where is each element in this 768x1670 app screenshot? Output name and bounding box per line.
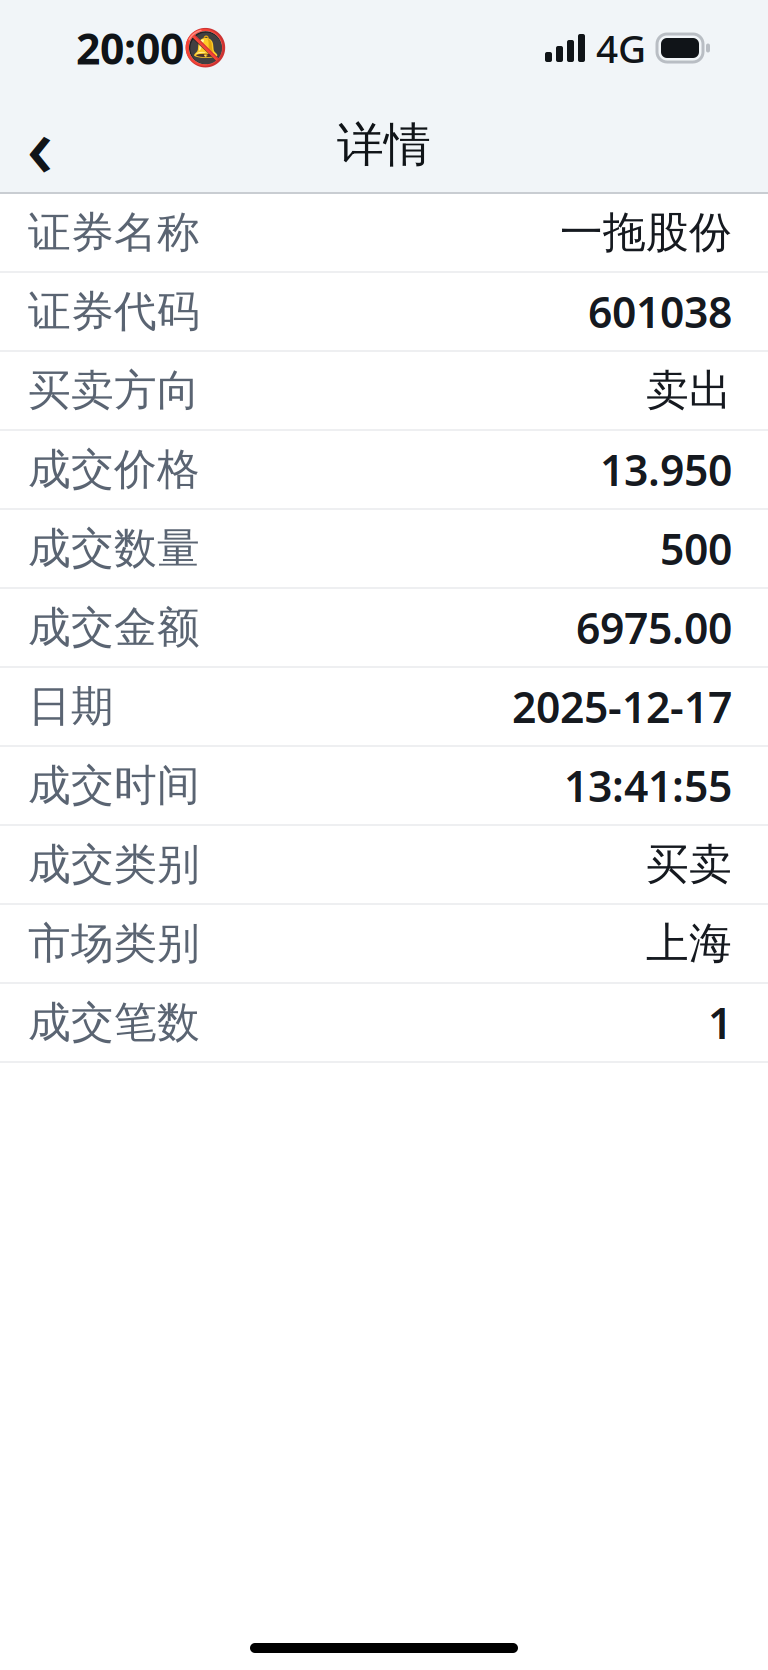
staticText: 买卖	[646, 838, 732, 891]
staticText: 🔕	[182, 27, 227, 68]
staticText: 成交时间	[28, 759, 200, 812]
staticText: 4G	[596, 22, 646, 74]
staticText: 成交笔数	[28, 996, 200, 1049]
staticText: 卖出	[646, 364, 732, 417]
staticText: 20:00	[76, 20, 184, 76]
staticText: 详情	[337, 116, 431, 174]
staticText: 1	[708, 994, 732, 1051]
staticText: 500	[660, 520, 732, 577]
staticText: 一拖股份	[560, 206, 732, 259]
staticText: 成交价格	[28, 443, 200, 496]
staticText: 成交类别	[28, 838, 200, 891]
staticText: 证券代码	[28, 285, 200, 338]
staticText: 上海	[646, 917, 732, 970]
staticText: 买卖方向	[28, 364, 200, 417]
staticText: 成交金额	[28, 601, 200, 654]
staticText: ‹	[26, 90, 53, 200]
staticText: 证券名称	[28, 206, 200, 259]
staticText: 市场类别	[28, 917, 200, 970]
staticText: 601038	[588, 283, 732, 340]
staticText: 13.950	[600, 441, 732, 498]
button[interactable]: 返回	[0, 103, 80, 187]
staticText: 6975.00	[576, 599, 732, 656]
staticText: 日期	[28, 680, 114, 733]
staticText: 成交数量	[28, 522, 200, 575]
staticText: 13:41:55	[564, 757, 732, 814]
staticText: 2025-12-17	[512, 678, 732, 735]
